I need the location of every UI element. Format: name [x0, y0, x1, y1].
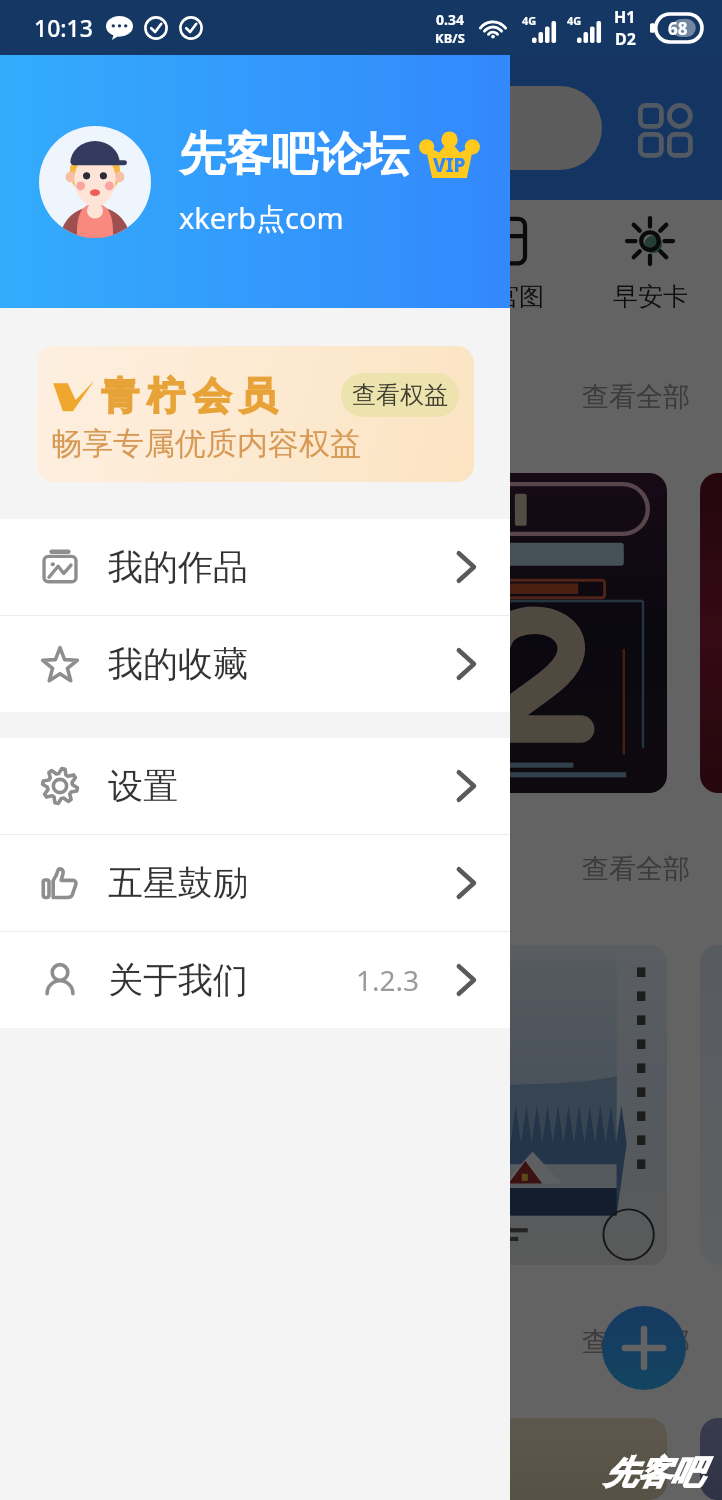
- button[interactable]: 查看全部: [582, 852, 690, 886]
- staticText: 拼长图: [325, 281, 400, 312]
- staticText: 68: [668, 17, 688, 40]
- button[interactable]: 拼图: [0, 200, 145, 320]
- staticText: 查看权益: [352, 380, 448, 410]
- button[interactable]: 我的作品: [0, 519, 510, 615]
- button[interactable]: 五星鼓励: [0, 835, 510, 931]
- staticText: 1.2.3: [356, 961, 420, 999]
- staticText: VIP: [433, 152, 466, 178]
- staticText: 4G: [567, 13, 582, 28]
- button[interactable]: 查看权益: [341, 373, 459, 417]
- staticText: KB/S: [435, 29, 465, 47]
- staticText: 关于我们: [108, 958, 248, 1002]
- staticText: 我的作品: [108, 545, 248, 589]
- button[interactable]: 关于我们: [0, 932, 510, 1028]
- staticText: 拼图: [48, 281, 98, 312]
- staticText: 4G: [522, 13, 537, 28]
- staticText: 我的收藏: [108, 642, 248, 686]
- staticText: H1: [614, 6, 636, 28]
- staticText: 先客吧: [604, 1452, 703, 1494]
- button[interactable]: [427, 1418, 667, 1500]
- staticText: 先客吧论坛: [179, 126, 409, 184]
- staticText: xkerb点com: [179, 198, 344, 238]
- button[interactable]: 早安卡: [578, 200, 722, 320]
- staticText: 畅享专属优质内容权益: [51, 424, 361, 463]
- button[interactable]: [700, 1418, 722, 1500]
- staticText: D2: [615, 28, 636, 50]
- button[interactable]: 长图: [145, 200, 290, 320]
- button[interactable]: 拼长图: [290, 200, 434, 320]
- staticText: 青柠会员: [97, 372, 281, 420]
- staticText: 0.34: [436, 10, 464, 29]
- button[interactable]: [427, 473, 667, 793]
- button[interactable]: 查看全部: [582, 1325, 690, 1359]
- button[interactable]: Add: [602, 1306, 686, 1390]
- button[interactable]: 设置: [0, 738, 510, 834]
- staticText: 10:13: [34, 12, 93, 43]
- button[interactable]: 青柠会员: [37, 346, 474, 482]
- staticText: 设置: [108, 764, 178, 808]
- button[interactable]: 九宫图: [434, 200, 578, 320]
- staticText: 长图: [193, 281, 243, 312]
- button[interactable]: [700, 473, 722, 793]
- staticText: 五星鼓励: [108, 861, 248, 905]
- button[interactable]: 我的收藏: [0, 616, 510, 712]
- button[interactable]: 查看全部: [582, 380, 690, 414]
- button[interactable]: Categories: [638, 103, 688, 153]
- staticText: 早安卡: [613, 281, 688, 312]
- button[interactable]: [30, 86, 602, 170]
- button[interactable]: [427, 945, 667, 1265]
- staticText: 九宫图: [469, 281, 544, 312]
